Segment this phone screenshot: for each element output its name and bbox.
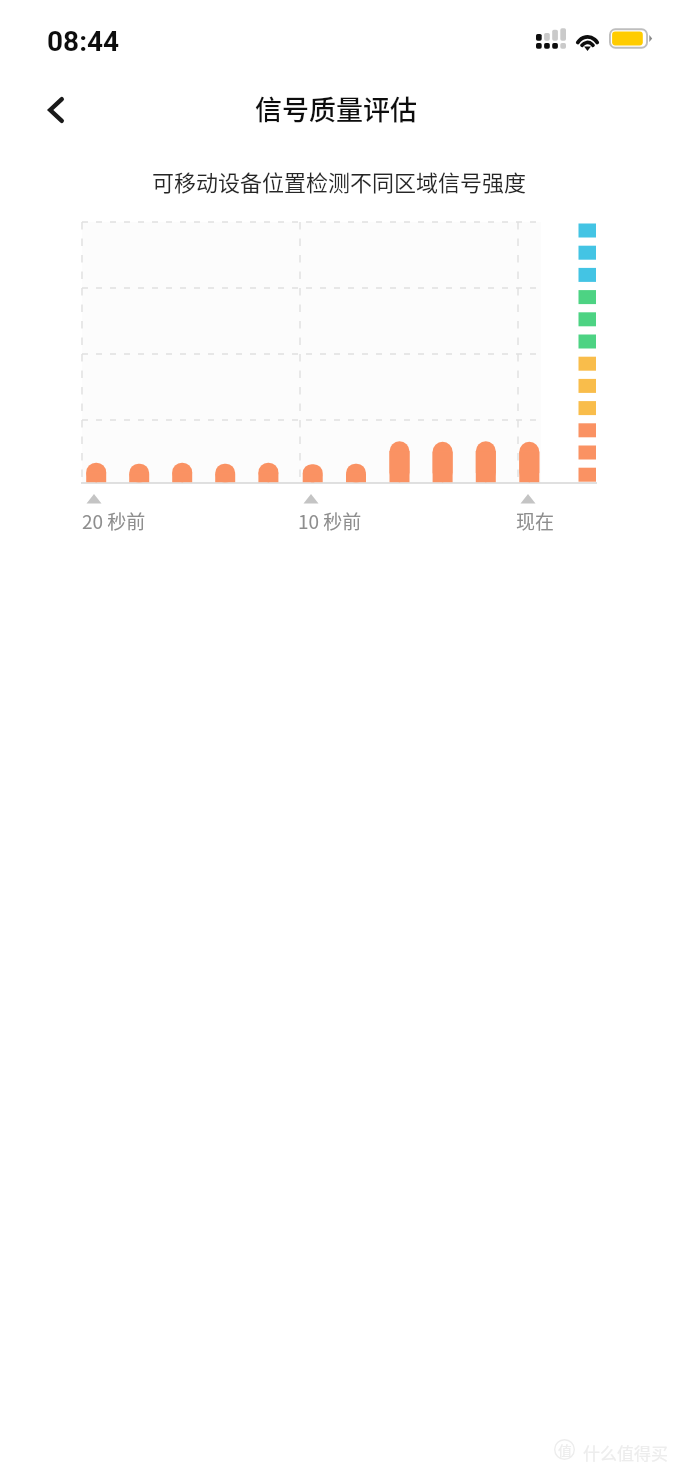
staticText: 20 秒前 xyxy=(82,507,146,535)
staticText: 值 xyxy=(558,1440,572,1460)
staticText: 信号质量评估 xyxy=(255,89,417,128)
staticText: 08:44 xyxy=(47,25,120,58)
button[interactable]: Back xyxy=(26,80,86,140)
staticText: 什么值得买 xyxy=(583,1440,668,1465)
staticText: 10 秒前 xyxy=(298,507,362,535)
staticText: 可移动设备位置检测不同区域信号强度 xyxy=(152,165,527,197)
staticText: 现在 xyxy=(516,507,555,535)
